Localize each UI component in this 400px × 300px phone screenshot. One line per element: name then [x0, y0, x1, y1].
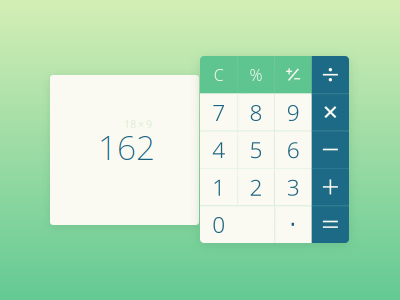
button[interactable]: Minus	[312, 131, 349, 168]
button[interactable]: 0	[200, 206, 274, 243]
button[interactable]: Plus Minus	[274, 56, 312, 93]
button[interactable]: Multiply	[312, 93, 349, 131]
button[interactable]: 6	[274, 131, 312, 168]
staticText: 2	[249, 172, 262, 202]
button[interactable]: Equals	[312, 206, 349, 243]
button[interactable]: 8	[237, 93, 274, 131]
button[interactable]: %	[237, 56, 274, 93]
staticText: 6	[287, 134, 300, 164]
button[interactable]: Plus	[312, 168, 349, 206]
staticText: 7	[212, 97, 225, 127]
staticText: 1	[212, 172, 225, 202]
button[interactable]: 9	[274, 93, 312, 131]
staticText: 0	[212, 209, 225, 239]
button[interactable]: 7	[200, 93, 237, 131]
staticText: 4	[212, 134, 225, 164]
button[interactable]: Divide	[312, 56, 349, 93]
staticText: 9	[287, 97, 300, 127]
button[interactable]: 5	[237, 131, 274, 168]
staticText: %	[249, 64, 262, 85]
staticText: 8	[249, 97, 262, 127]
button[interactable]: 4	[200, 131, 237, 168]
staticText: 162	[98, 125, 155, 169]
button[interactable]: 3	[274, 168, 312, 206]
staticText: 5	[249, 134, 262, 164]
button[interactable]: 1	[200, 168, 237, 206]
staticText: 3	[287, 172, 300, 202]
button[interactable]: C	[200, 56, 237, 93]
button[interactable]: Decimal point	[274, 206, 312, 243]
staticText: C	[214, 64, 224, 85]
button[interactable]: 2	[237, 168, 274, 206]
staticText: 18 × 9	[124, 117, 152, 131]
